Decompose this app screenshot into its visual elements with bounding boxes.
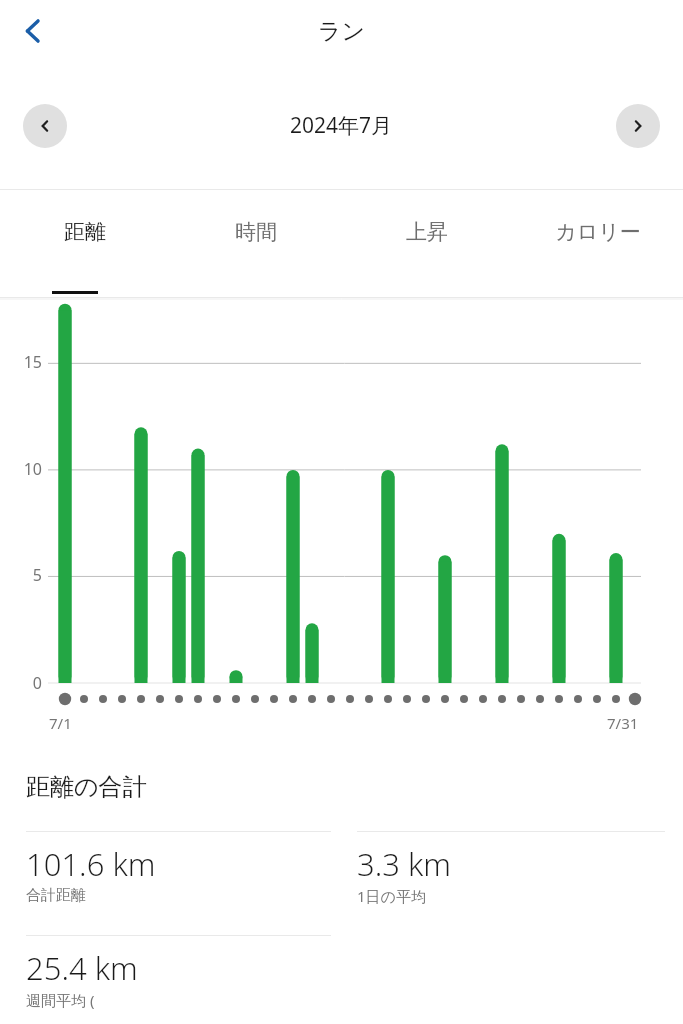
staticText: 合計距離: [26, 886, 86, 905]
staticText: 上昇: [406, 219, 448, 245]
staticText: 2024年7月: [290, 111, 393, 140]
staticText: 時間: [235, 219, 277, 245]
staticText: 7/31: [607, 713, 639, 733]
staticText: 距離の合計: [26, 772, 147, 802]
button[interactable]: カロリー: [512, 190, 683, 298]
staticText: 1日の平均: [357, 886, 426, 906]
staticText: 7/1: [49, 713, 72, 733]
button[interactable]: Next month: [616, 104, 660, 148]
staticText: 距離: [64, 219, 106, 245]
staticText: カロリー: [555, 219, 641, 245]
staticText: 5: [32, 564, 42, 586]
staticText: 10: [23, 458, 42, 480]
staticText: 101.6 km: [26, 843, 156, 885]
button[interactable]: 上昇: [341, 190, 512, 298]
button[interactable]: Previous month: [23, 104, 67, 148]
staticText: 週間平均 (: [26, 990, 95, 1010]
staticText: 3.3 km: [357, 843, 452, 885]
button[interactable]: 時間: [170, 190, 341, 298]
button[interactable]: 距離: [0, 190, 170, 298]
staticText: ラン: [318, 17, 366, 46]
button[interactable]: Back: [6, 4, 60, 58]
staticText: 25.4 km: [26, 947, 138, 989]
staticText: 0: [32, 672, 42, 694]
staticText: 15: [23, 351, 42, 373]
